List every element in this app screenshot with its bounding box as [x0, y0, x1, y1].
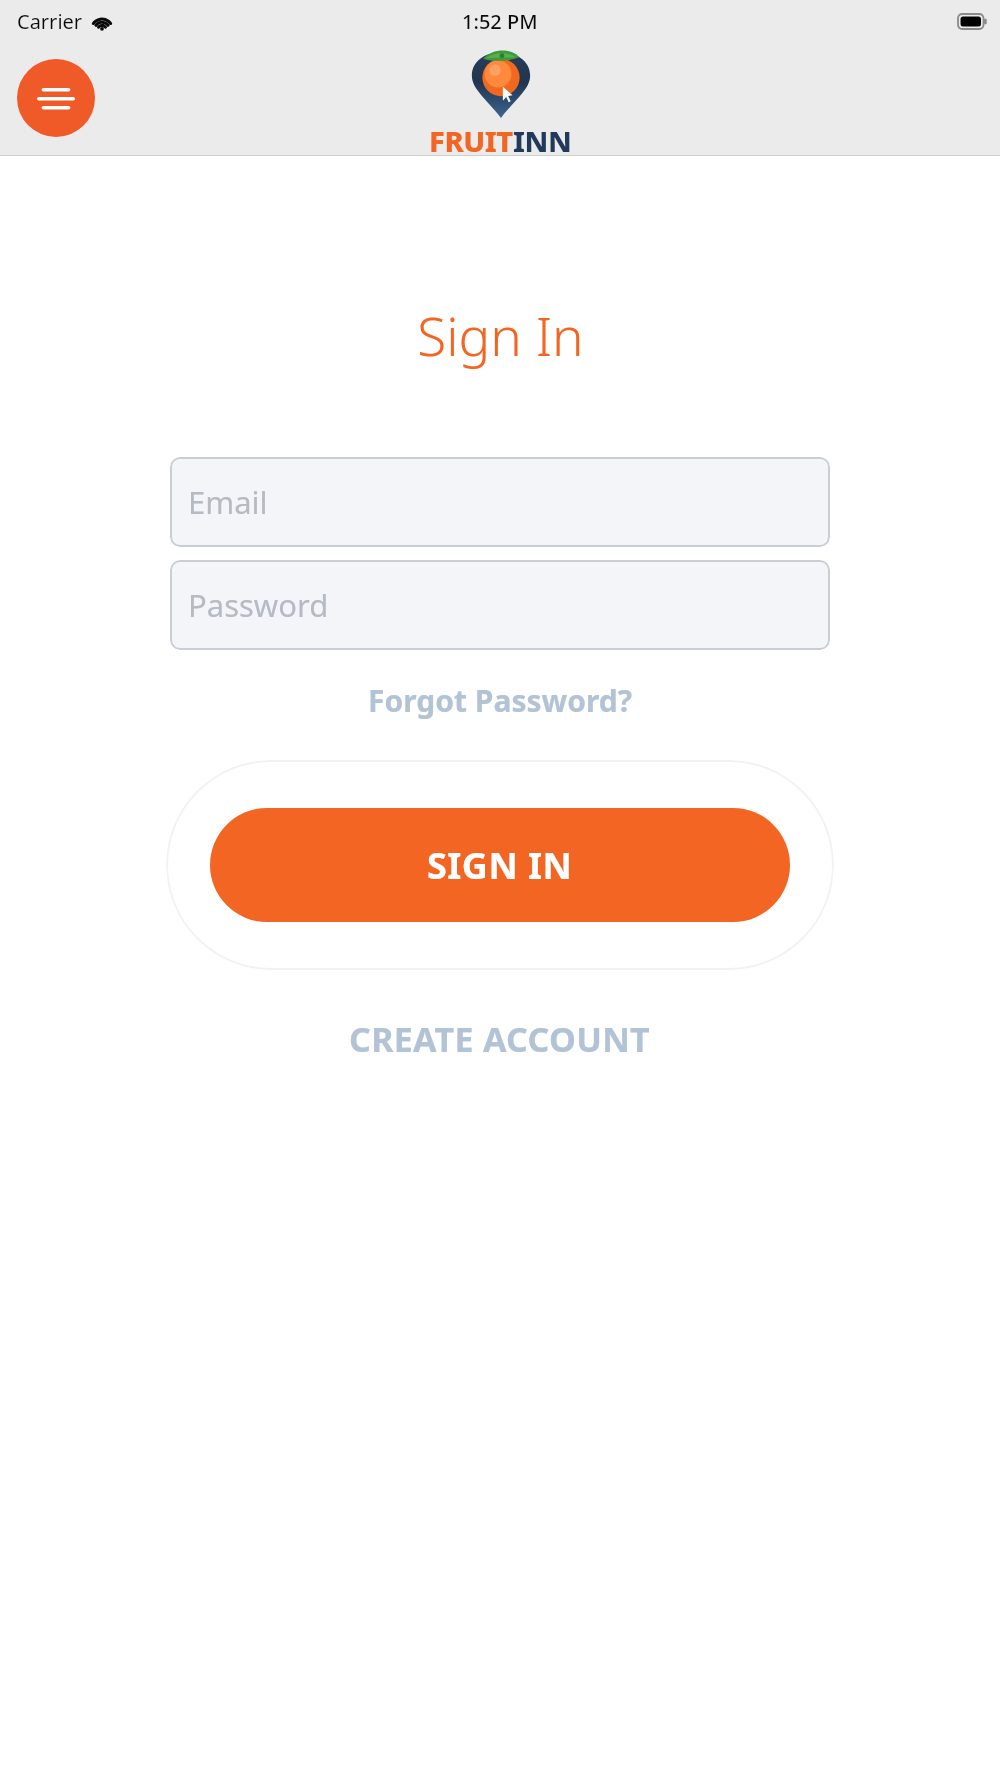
- button[interactable]: Email: [170, 457, 830, 547]
- button[interactable]: SIGN IN: [210, 808, 790, 922]
- staticText: FRUIT: [429, 121, 513, 160]
- button[interactable]: Forgot Password?: [358, 676, 643, 725]
- staticText: Forgot Password?: [368, 680, 633, 721]
- button[interactable]: CREATE ACCOUNT: [337, 1010, 663, 1068]
- staticText: INN: [513, 121, 572, 160]
- staticText: Email: [188, 481, 268, 523]
- staticText: Password: [188, 584, 329, 626]
- staticText: SIGN IN: [427, 841, 573, 890]
- staticText: CREATE ACCOUNT: [349, 1016, 651, 1062]
- staticText: 1:52 PM: [462, 8, 538, 35]
- staticText: Carrier: [17, 8, 83, 35]
- button[interactable]: Menu: [17, 59, 95, 137]
- staticText: Sign In: [417, 299, 584, 371]
- button[interactable]: Password: [170, 560, 830, 650]
